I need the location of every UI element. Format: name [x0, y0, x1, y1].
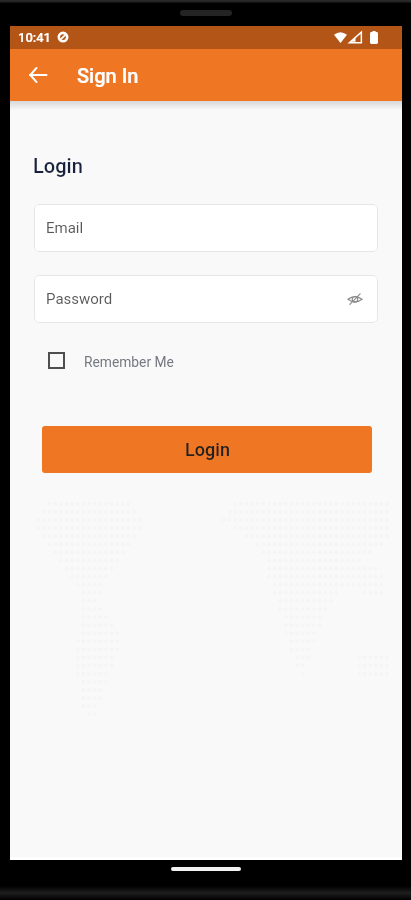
staticText: Email [46, 219, 84, 237]
staticText: Login [185, 439, 230, 460]
staticText: Remember Me [84, 354, 174, 370]
button[interactable]: Back [18, 55, 58, 95]
button[interactable]: Remember Me [34, 342, 174, 378]
button[interactable]: Password [34, 275, 378, 323]
button[interactable]: Email [34, 204, 378, 252]
staticText: Password [46, 290, 113, 308]
staticText: Sign In [77, 64, 139, 87]
button[interactable]: Login [42, 426, 372, 473]
staticText: Login [33, 154, 83, 177]
staticText: 10:41 [18, 30, 52, 45]
button[interactable]: Toggle password visibility [344, 288, 366, 310]
